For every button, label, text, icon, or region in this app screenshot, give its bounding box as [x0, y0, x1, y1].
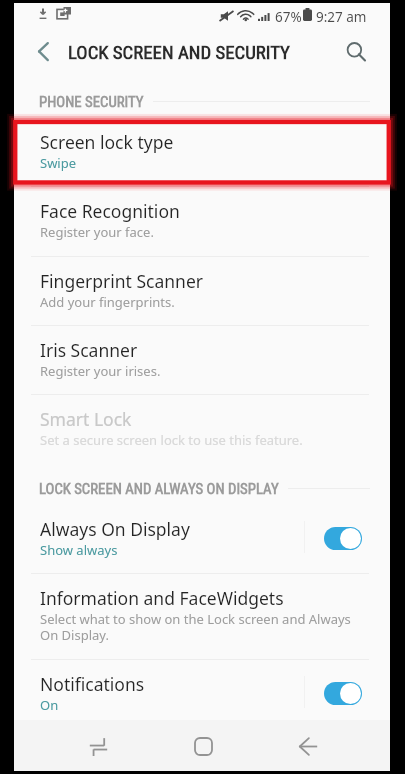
staticText: Notifications — [40, 672, 145, 696]
button[interactable]: Notifications — [14, 659, 390, 725]
button[interactable]: Home — [163, 722, 243, 771]
staticText: Register your irises. — [40, 362, 161, 380]
staticText: Screen lock type — [40, 130, 174, 154]
staticText: Iris Scanner — [40, 338, 138, 362]
button[interactable]: Face Recognition — [14, 186, 390, 255]
staticText: Swipe — [40, 154, 77, 172]
staticText: 67% — [275, 8, 302, 26]
staticText: On — [40, 696, 59, 714]
staticText: PHONE SECURITY — [39, 93, 144, 109]
staticText: Set a secure screen lock to use this fea… — [40, 431, 303, 449]
button[interactable]: Recent apps — [58, 722, 138, 771]
staticText: Smart Lock — [40, 407, 132, 431]
staticText: Information and FaceWidgets — [40, 586, 284, 610]
button[interactable]: Back — [268, 722, 348, 771]
staticText: LOCK SCREEN AND ALWAYS ON DISPLAY — [39, 480, 279, 496]
button[interactable]: Iris Scanner — [14, 325, 390, 394]
button[interactable]: Toggle — [324, 682, 362, 705]
staticText: LOCK SCREEN AND SECURITY — [68, 42, 290, 64]
button[interactable]: Toggle — [324, 527, 362, 550]
button[interactable]: Always On Display — [14, 504, 390, 573]
button[interactable]: Fingerprint Scanner — [14, 256, 390, 325]
staticText: Add your fingerprints. — [40, 293, 175, 311]
button[interactable]: Screen lock type — [14, 117, 390, 186]
staticText: Show always — [40, 541, 118, 559]
staticText: Fingerprint Scanner — [40, 269, 204, 293]
staticText: Select what to show on the Lock screen a… — [40, 610, 351, 643]
button[interactable]: Information and FaceWidgets — [14, 573, 390, 660]
staticText: Face Recognition — [40, 199, 180, 223]
staticText: Register your face. — [40, 223, 154, 241]
button[interactable]: Navigate up — [17, 28, 63, 75]
button[interactable]: Search — [332, 28, 378, 75]
staticText: Always On Display — [40, 517, 190, 541]
button[interactable]: Smart Lock — [14, 394, 390, 463]
staticText: 9:27 am — [316, 8, 367, 26]
